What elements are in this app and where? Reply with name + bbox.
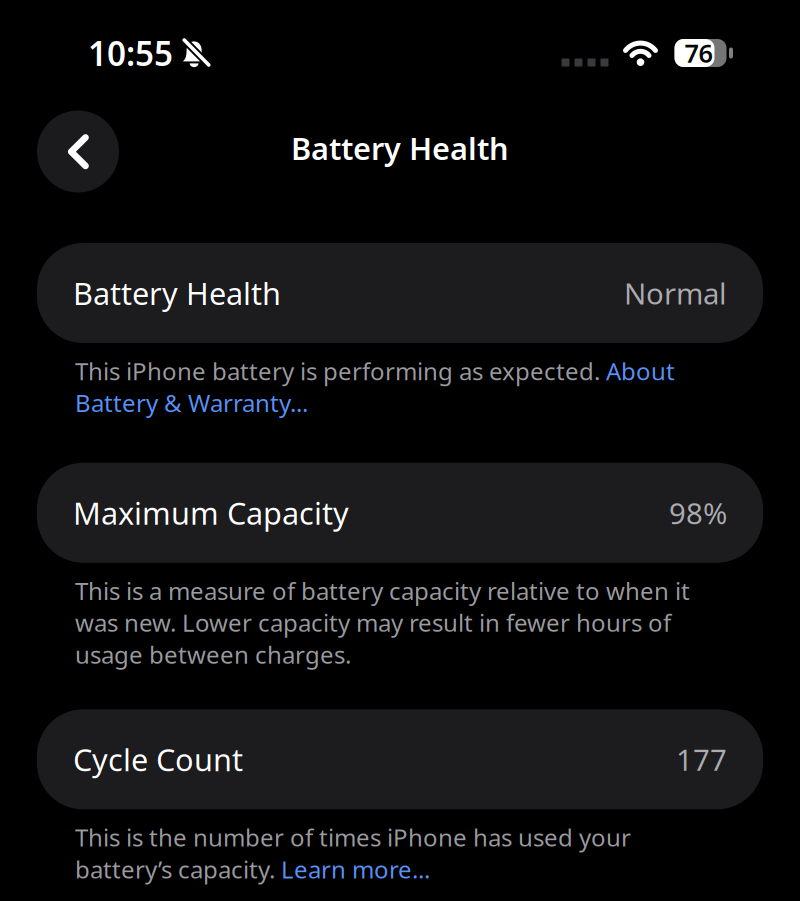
button[interactable]: Back <box>37 110 119 192</box>
staticText: Cycle Count <box>73 739 243 780</box>
button[interactable]: Learn more... <box>281 853 430 885</box>
staticText: 98% <box>669 493 727 532</box>
button[interactable]: Cycle Count <box>37 709 763 809</box>
staticText: 76 <box>684 36 712 70</box>
button[interactable]: Battery Health <box>37 243 763 343</box>
staticText: About <box>606 355 675 387</box>
staticText: This is a measure of battery capacity re… <box>75 575 690 670</box>
staticText: Learn more... <box>281 853 430 885</box>
staticText: Normal <box>624 273 727 312</box>
button[interactable]: Maximum Capacity <box>37 463 763 563</box>
button[interactable]: Battery & Warranty... <box>75 387 308 419</box>
staticText: Battery Health <box>73 273 281 313</box>
staticText: 10:55 <box>88 31 173 75</box>
staticText: Battery & Warranty... <box>75 387 308 419</box>
staticText: This iPhone battery is performing as exp… <box>75 355 606 387</box>
staticText: battery’s capacity. <box>75 853 281 885</box>
staticText: This is the number of times iPhone has u… <box>75 821 631 853</box>
staticText: 177 <box>676 740 727 779</box>
staticText: Maximum Capacity <box>73 492 349 533</box>
staticText: Battery Health <box>291 128 509 168</box>
button[interactable]: About <box>606 355 675 387</box>
